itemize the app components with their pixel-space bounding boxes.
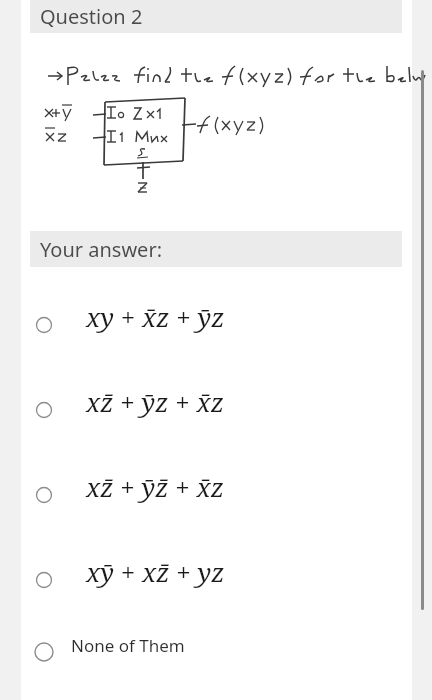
staticText: xz̄ + ȳz̄ + x̄z bbox=[86, 469, 225, 504]
button[interactable]: None of Them bbox=[21, 625, 412, 675]
button[interactable]: xz̄ + ȳz̄ + x̄z bbox=[21, 455, 412, 540]
staticText: xz̄ + ȳz + x̄z bbox=[86, 384, 225, 419]
button[interactable]: xz̄ + ȳz + x̄z bbox=[21, 370, 412, 455]
button[interactable]: xy + x̄z + ȳz bbox=[21, 285, 412, 370]
staticText: Question 2 bbox=[40, 3, 143, 30]
staticText: None of Them bbox=[71, 634, 185, 657]
button[interactable]: xȳ + xz̄ + yz bbox=[21, 540, 412, 625]
staticText: xȳ + xz̄ + yz bbox=[86, 554, 225, 589]
staticText: xy + x̄z + ȳz bbox=[86, 299, 225, 334]
staticText: Your answer: bbox=[40, 236, 163, 263]
